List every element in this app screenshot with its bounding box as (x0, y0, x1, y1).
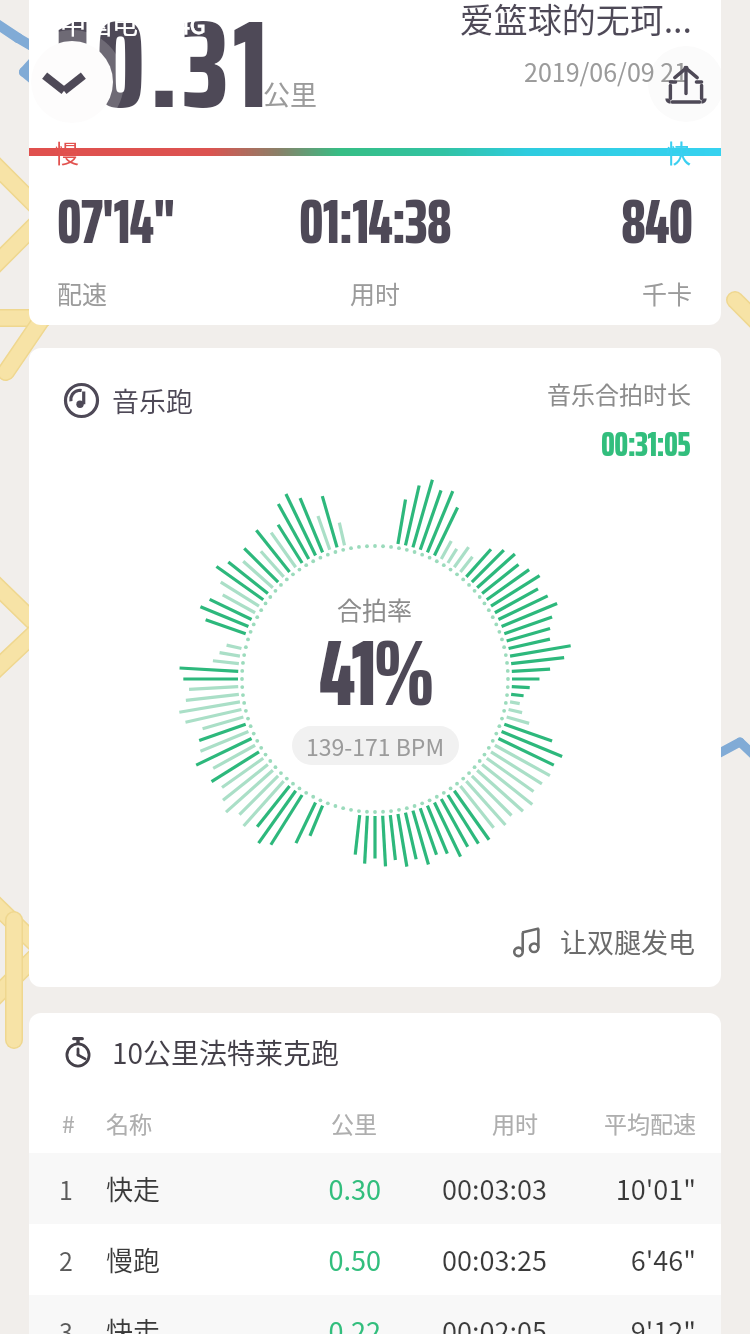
staticText: 用时 (350, 275, 401, 311)
staticText: 07'14" (57, 173, 175, 271)
staticText: 公里 (263, 74, 317, 113)
button[interactable]: 3 (29, 1295, 721, 1334)
staticText: 千卡 (642, 275, 693, 311)
staticText: 慢 (54, 134, 80, 170)
staticText: 00:02:05 (381, 1311, 547, 1334)
staticText: 快走 (106, 1311, 160, 1334)
staticText: 音乐跑 (112, 381, 193, 420)
staticText: 840 (621, 173, 693, 271)
button[interactable]: 音乐跑 (63, 381, 193, 420)
staticText: 139-171 BPM (306, 729, 445, 762)
button[interactable]: 2 (29, 1224, 721, 1295)
staticText: 配速 (57, 275, 108, 311)
staticText: 慢跑 (106, 1240, 160, 1279)
button[interactable]: 10公里法特莱克跑 (63, 1013, 721, 1091)
staticText: 让双腿发电 (560, 922, 695, 961)
staticText: # (62, 1106, 75, 1139)
staticText: 0.22 (249, 1311, 381, 1334)
staticText: 9'12" (547, 1311, 696, 1334)
staticText: 10公里法特莱克跑 (112, 1032, 340, 1073)
staticText: 3 (59, 1313, 73, 1334)
staticText: 用时 (377, 1106, 538, 1139)
staticText: 10.31 (57, 0, 272, 161)
staticText: 01:14:38 (299, 173, 451, 271)
staticText: 0.50 (249, 1240, 381, 1279)
staticText: 公里 (251, 1106, 377, 1139)
button[interactable]: Collapse (35, 54, 93, 112)
staticText: 快 (666, 134, 692, 170)
staticText: 00:03:03 (381, 1169, 547, 1208)
staticText: 2 (59, 1242, 73, 1278)
staticText: 1 (59, 1171, 73, 1207)
staticText: 快走 (106, 1169, 160, 1208)
button[interactable]: Share (648, 46, 721, 122)
staticText: 10'01" (547, 1169, 696, 1208)
staticText: 2019/06/09 21 (429, 53, 688, 89)
staticText: 6'46" (547, 1240, 696, 1279)
staticText: 平均配速 (538, 1106, 696, 1139)
staticText: 0.30 (249, 1169, 381, 1208)
staticText: 00:03:25 (381, 1240, 547, 1279)
staticText: 名称 (106, 1106, 152, 1139)
button[interactable]: 1 (29, 1153, 721, 1224)
staticText: 爱篮球的无珂... (409, 0, 692, 43)
staticText: 合拍率 (337, 591, 413, 627)
staticText: 4G (177, 7, 206, 40)
staticText: 中国电信 (60, 4, 165, 42)
staticText: 00:31:05 (601, 416, 691, 471)
staticText: 音乐合拍时长 (547, 376, 691, 411)
button[interactable]: 让双腿发电 (512, 922, 695, 961)
staticText: 41% (319, 601, 432, 746)
